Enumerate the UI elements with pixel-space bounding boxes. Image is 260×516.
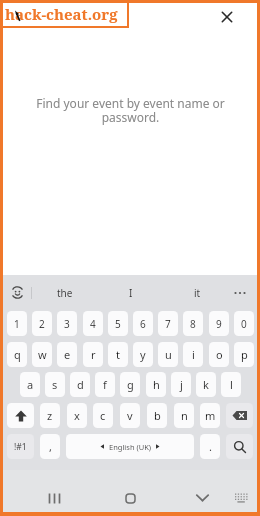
staticText: 9: [216, 317, 222, 331]
staticText: b: [154, 408, 161, 423]
button[interactable]: .: [200, 434, 220, 459]
staticText: g: [127, 377, 134, 392]
staticText: j: [180, 377, 183, 392]
button[interactable]: r: [83, 342, 103, 367]
button[interactable]: k: [196, 372, 216, 397]
staticText: t: [116, 347, 120, 362]
button[interactable]: j: [171, 372, 191, 397]
staticText: 5: [115, 317, 121, 331]
button[interactable]: 6: [133, 311, 153, 336]
staticText: 3: [64, 317, 70, 331]
staticText: ,: [49, 439, 52, 454]
button[interactable]: 4: [83, 311, 103, 336]
staticText: k: [203, 377, 209, 392]
staticText: d: [77, 377, 84, 392]
button[interactable]: !#1: [7, 434, 34, 459]
button[interactable]: 7: [158, 311, 178, 336]
button[interactable]: [230, 487, 252, 509]
staticText: u: [165, 347, 172, 362]
button[interactable]: 2: [32, 311, 52, 336]
staticText: i: [192, 347, 195, 362]
button[interactable]: x: [67, 403, 87, 428]
staticText: s: [52, 377, 58, 392]
staticText: 0: [241, 317, 247, 331]
button[interactable]: e: [57, 342, 77, 367]
staticText: e: [64, 347, 71, 362]
button[interactable]: t: [108, 342, 128, 367]
staticText: o: [216, 347, 223, 362]
staticText: a: [27, 377, 34, 392]
staticText: hack-cheat.org: [5, 4, 118, 24]
staticText: Find your event by event name or passwor…: [36, 95, 225, 126]
button[interactable]: i: [183, 342, 203, 367]
button[interactable]: [190, 486, 214, 510]
staticText: it: [194, 286, 201, 300]
button[interactable]: [118, 486, 142, 510]
staticText: m: [205, 408, 216, 423]
staticText: 6: [140, 317, 146, 331]
button[interactable]: ,: [40, 434, 60, 459]
button[interactable]: p: [234, 342, 254, 367]
staticText: p: [241, 347, 248, 362]
staticText: !#1: [14, 441, 27, 453]
button[interactable]: o: [209, 342, 229, 367]
staticText: c: [100, 408, 106, 423]
button[interactable]: 1: [7, 311, 27, 336]
button[interactable]: m: [200, 403, 220, 428]
staticText: x: [74, 408, 80, 423]
button[interactable]: 5: [108, 311, 128, 336]
button[interactable]: [217, 7, 237, 27]
button[interactable]: n: [174, 403, 194, 428]
staticText: r: [91, 347, 96, 362]
staticText: I: [129, 286, 133, 300]
button[interactable]: [7, 403, 34, 428]
button[interactable]: the: [45, 286, 85, 300]
button[interactable]: English (UK): [66, 434, 194, 459]
button[interactable]: c: [93, 403, 113, 428]
button[interactable]: l: [221, 372, 241, 397]
button[interactable]: y: [133, 342, 153, 367]
button[interactable]: h: [146, 372, 166, 397]
button[interactable]: 3: [57, 311, 77, 336]
button[interactable]: q: [7, 342, 27, 367]
button[interactable]: 8: [183, 311, 203, 336]
staticText: 1: [14, 317, 20, 331]
button[interactable]: 9: [209, 311, 229, 336]
button[interactable]: [226, 403, 253, 428]
button[interactable]: f: [95, 372, 115, 397]
button[interactable]: 0: [234, 311, 254, 336]
button[interactable]: d: [70, 372, 90, 397]
staticText: 7: [165, 317, 171, 331]
button[interactable]: it: [177, 286, 217, 300]
button[interactable]: [232, 290, 248, 296]
button[interactable]: I: [111, 286, 151, 300]
button[interactable]: g: [120, 372, 140, 397]
staticText: 2: [39, 317, 45, 331]
staticText: l: [230, 377, 233, 392]
staticText: v: [127, 408, 133, 423]
button[interactable]: [226, 434, 253, 459]
button[interactable]: z: [40, 403, 60, 428]
button[interactable]: v: [120, 403, 140, 428]
staticText: n: [181, 408, 188, 423]
button[interactable]: [42, 486, 66, 510]
staticText: 8: [190, 317, 196, 331]
staticText: h: [153, 377, 160, 392]
staticText: the: [57, 286, 73, 300]
staticText: f: [103, 377, 107, 392]
staticText: y: [140, 347, 146, 362]
button[interactable]: a: [20, 372, 40, 397]
staticText: z: [47, 408, 53, 423]
button[interactable]: w: [32, 342, 52, 367]
button[interactable]: b: [147, 403, 167, 428]
button[interactable]: u: [158, 342, 178, 367]
staticText: English (UK): [109, 442, 152, 452]
button[interactable]: s: [45, 372, 65, 397]
staticText: 4: [90, 317, 96, 331]
staticText: .: [209, 439, 212, 454]
staticText: w: [38, 347, 47, 362]
staticText: q: [14, 347, 21, 362]
